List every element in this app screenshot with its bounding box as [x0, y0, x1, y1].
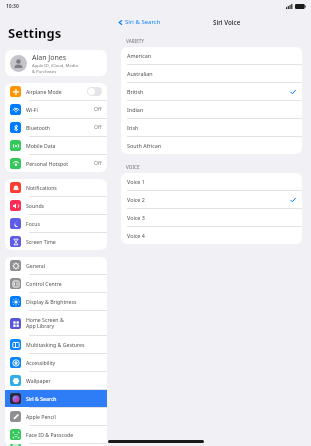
staticText: Voice 4 — [127, 232, 296, 239]
staticText: Apple ID, iCloud, Media & Purchases — [32, 63, 78, 74]
button[interactable]: Battery — [5, 444, 107, 446]
staticText: South African — [127, 142, 296, 149]
staticText: Wallpaper — [26, 377, 102, 384]
staticText: Screen Time — [26, 238, 102, 245]
staticText: Mobile Data — [26, 142, 102, 149]
button[interactable]: American — [121, 47, 302, 64]
staticText: Bluetooth — [26, 124, 94, 131]
staticText: VOICE — [126, 164, 140, 170]
staticText: Irish — [127, 124, 296, 131]
button[interactable]: Multitasking & Gestures — [5, 336, 107, 353]
staticText: Siri & Search — [125, 18, 161, 26]
button[interactable]: Face ID & Passcode — [5, 426, 107, 443]
staticText: Multitasking & Gestures — [26, 341, 102, 348]
button[interactable]: Screen Time — [5, 233, 107, 250]
staticText: Siri & Search — [26, 395, 102, 402]
button[interactable]: Airplane Mode — [5, 83, 107, 100]
staticText: Face ID & Passcode — [26, 431, 102, 438]
staticText: 10:30 — [6, 3, 19, 10]
staticText: Australian — [127, 70, 296, 77]
staticText: Indian — [127, 106, 296, 113]
button[interactable]: Accessibility — [5, 354, 107, 371]
button[interactable]: Bluetooth — [5, 119, 107, 136]
staticText: Notifications — [26, 184, 102, 191]
staticText: Personal Hotspot — [26, 160, 94, 167]
other: Airplane Mode toggle — [87, 87, 102, 96]
button[interactable]: Voice 3 — [121, 209, 302, 226]
staticText: Voice 2 — [127, 196, 290, 203]
staticText: Apple Pencil — [26, 413, 102, 420]
button[interactable]: British — [121, 83, 302, 100]
staticText: Display & Brightness — [26, 298, 102, 305]
button[interactable]: Display & Brightness — [5, 293, 107, 310]
button[interactable]: Indian — [121, 101, 302, 118]
button[interactable]: Irish — [121, 119, 302, 136]
staticText: Siri Voice — [213, 18, 241, 26]
button[interactable]: Voice 1 — [121, 173, 302, 190]
button[interactable]: Voice 4 — [121, 227, 302, 244]
button[interactable]: Sounds — [5, 197, 107, 214]
staticText: VARIETY — [126, 38, 145, 44]
staticText: Alan Jones — [32, 53, 67, 63]
staticText: Off — [94, 124, 102, 131]
button[interactable]: Back — [118, 18, 161, 26]
staticText: Focus — [26, 220, 102, 227]
button[interactable]: Voice 2 — [121, 191, 302, 208]
button[interactable]: Apple Pencil — [5, 408, 107, 425]
staticText: Off — [94, 160, 102, 167]
button[interactable]: Control Centre — [5, 275, 107, 292]
button[interactable]: Australian — [121, 65, 302, 82]
staticText: General — [26, 262, 102, 269]
button[interactable]: South African — [121, 137, 302, 154]
other: Back — [118, 20, 123, 25]
staticText: Sounds — [26, 202, 102, 209]
staticText: British — [127, 88, 290, 95]
staticText: Home Screen & App Library — [26, 316, 102, 330]
staticText: Settings — [8, 24, 62, 42]
button[interactable]: Siri & Search — [5, 390, 107, 407]
staticText: Accessibility — [26, 359, 102, 366]
staticText: Voice 1 — [127, 178, 296, 185]
button[interactable]: Home Screen & App Library — [5, 311, 107, 335]
staticText: Voice 3 — [127, 214, 296, 221]
staticText: American — [127, 52, 296, 59]
button[interactable]: Mobile Data — [5, 137, 107, 154]
button[interactable]: Wi-Fi — [5, 101, 107, 118]
button[interactable]: Notifications — [5, 179, 107, 196]
staticText: Wi-Fi — [26, 106, 94, 113]
staticText: Off — [94, 106, 102, 113]
staticText: Control Centre — [26, 280, 102, 287]
button[interactable]: Focus — [5, 215, 107, 232]
button[interactable]: Alan Jones — [5, 50, 107, 76]
button[interactable]: Wallpaper — [5, 372, 107, 389]
button[interactable]: Personal Hotspot — [5, 155, 107, 172]
staticText: Airplane Mode — [26, 88, 87, 95]
button[interactable]: General — [5, 257, 107, 274]
